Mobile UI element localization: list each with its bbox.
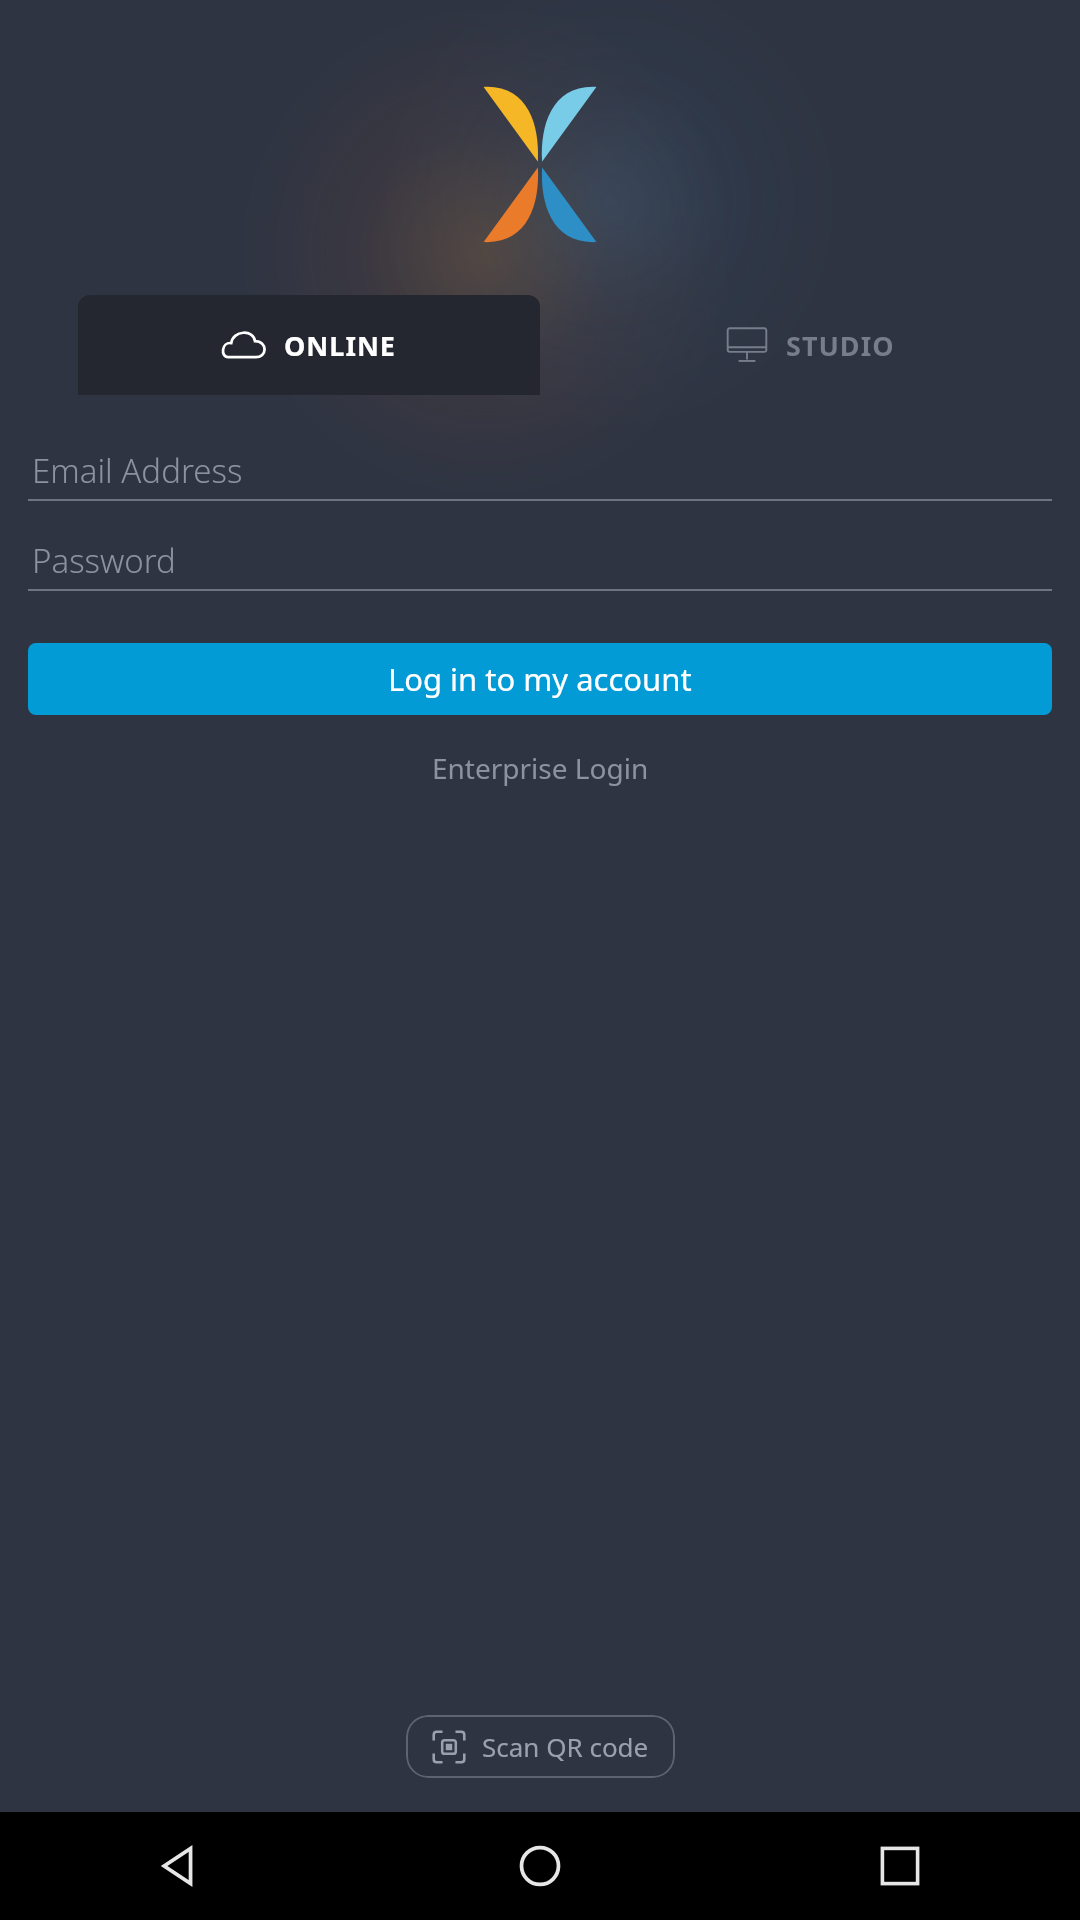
button[interactable]: Email Address xyxy=(28,441,1052,501)
button[interactable]: Scan QR code xyxy=(406,1715,675,1778)
button[interactable]: Log in to my account xyxy=(28,643,1052,715)
staticText: Log in to my account xyxy=(388,658,692,700)
button[interactable]: Back xyxy=(0,1812,360,1920)
button[interactable]: Password xyxy=(28,531,1052,591)
button[interactable]: ONLINE xyxy=(78,295,540,395)
staticText: ONLINE xyxy=(284,327,396,364)
staticText: Scan QR code xyxy=(482,1729,649,1764)
staticText: Password xyxy=(32,538,176,583)
staticText: STUDIO xyxy=(786,327,895,364)
staticText: Email Address xyxy=(32,448,243,493)
button[interactable]: Home xyxy=(360,1812,720,1920)
button[interactable]: STUDIO xyxy=(540,295,1080,395)
button[interactable]: Recent apps xyxy=(720,1812,1080,1920)
button[interactable]: Enterprise Login xyxy=(408,735,673,801)
staticText: Enterprise Login xyxy=(432,749,649,787)
